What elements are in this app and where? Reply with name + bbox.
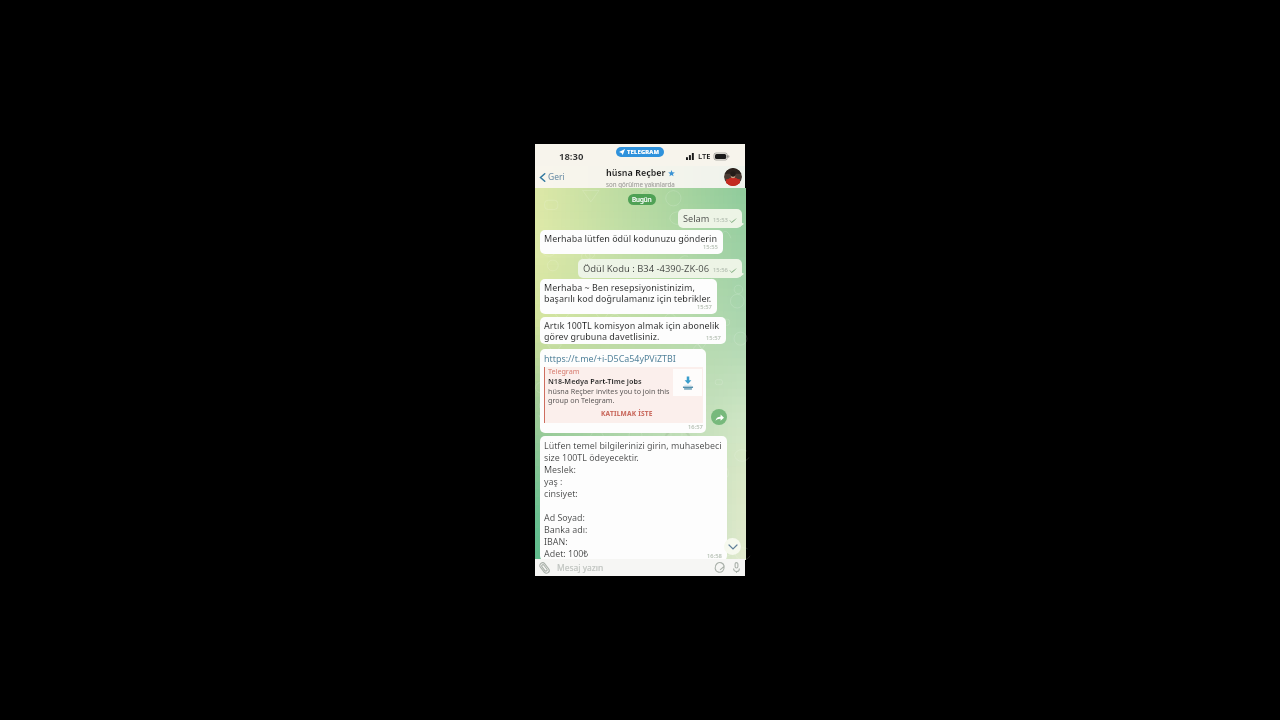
staticText: KATILMAK İSTE — [601, 409, 653, 418]
button[interactable]: Ödül Kodu : B34 -4390-ZK-06 — [578, 259, 742, 278]
button[interactable]: TELEGRAM — [616, 147, 664, 157]
staticText: son görülme yakınlarda — [606, 180, 675, 188]
staticText: https://t.me/+i-D5Ca54yPViZTBI — [544, 352, 676, 364]
button[interactable]: Selam — [678, 209, 742, 228]
staticText: 15:57 — [706, 334, 721, 342]
staticText: 15:57 — [697, 303, 712, 311]
button[interactable]: Scroll to bottom — [724, 538, 741, 555]
button[interactable]: Sticker — [714, 562, 725, 573]
staticText: TELEGRAM — [627, 148, 660, 156]
button[interactable]: Forward message — [711, 409, 727, 425]
button[interactable]: Geri — [535, 167, 571, 187]
staticText: Lütfen temel bilgilerinizi girin, muhase… — [544, 439, 722, 559]
staticText: Merhaba ~ Ben resepsiyonistinizim, başar… — [544, 281, 712, 304]
staticText: hüsna Reçber — [606, 167, 666, 179]
button[interactable]: Attach — [540, 562, 549, 574]
staticText: Bugün — [632, 195, 652, 204]
staticText: 15:53 — [713, 216, 728, 224]
button[interactable]: Profile photo — [724, 168, 742, 186]
staticText: Telegram — [548, 366, 580, 376]
staticText: 18:30 — [559, 150, 584, 163]
button[interactable]: Voice message — [733, 562, 740, 573]
staticText: 16:58 — [707, 552, 722, 560]
button[interactable]: https://t.me/+i-D5Ca54yPViZTBI — [540, 349, 706, 433]
button[interactable]: Bugün — [628, 194, 656, 205]
staticText: Mesaj yazın — [557, 562, 604, 574]
button[interactable]: Lütfen temel bilgilerinizi girin, muhase… — [540, 436, 727, 561]
staticText: 15:56 — [713, 266, 728, 274]
staticText: Artık 100TL komisyon almak için abonelik… — [544, 319, 720, 342]
staticText: LTE — [698, 151, 711, 161]
staticText: Ödül Kodu : B34 -4390-ZK-06 — [583, 262, 710, 275]
staticText: 15:55 — [703, 243, 718, 251]
button[interactable]: Merhaba lütfen ödül kodunuzu gönderin — [540, 230, 723, 254]
staticText: Selam — [683, 212, 710, 225]
staticText: Geri — [548, 171, 565, 183]
button[interactable]: Merhaba ~ Ben resepsiyonistinizim, başar… — [540, 279, 717, 314]
staticText: 16:57 — [688, 423, 703, 431]
staticText: N18-Medya Part-Time jobs — [548, 376, 642, 386]
staticText: Merhaba lütfen ödül kodunuzu gönderin — [544, 232, 718, 244]
button[interactable]: Artık 100TL komisyon almak için abonelik… — [540, 317, 726, 344]
staticText: hüsna Reçber invites you to join this gr… — [548, 386, 670, 405]
